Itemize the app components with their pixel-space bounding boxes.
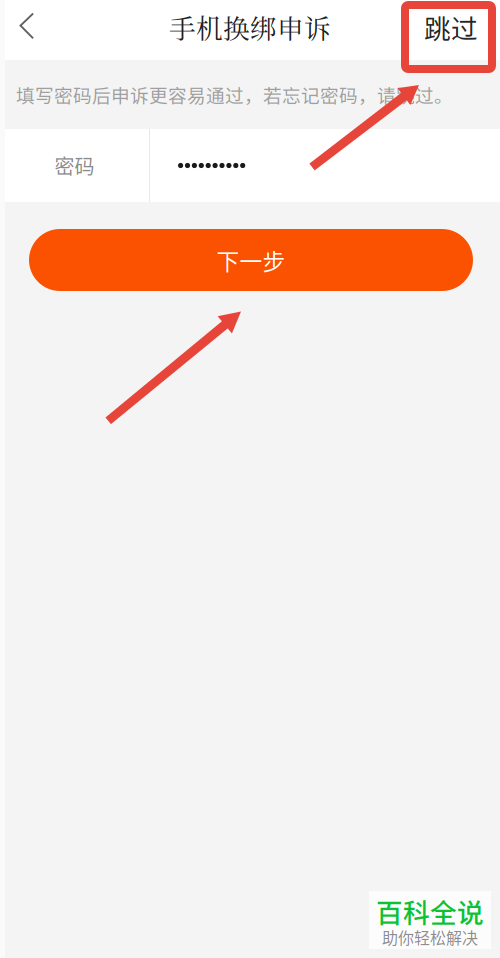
- button[interactable]: 跳过: [402, 0, 500, 60]
- button[interactable]: Back: [0, 0, 54, 60]
- staticText: 跳过: [424, 8, 478, 46]
- staticText: 百科全说: [376, 892, 484, 930]
- staticText: 填写密码后申诉更容易通过，若忘记密码，请跳过。: [16, 81, 453, 108]
- staticText: 手机换绑申诉: [169, 8, 331, 46]
- button[interactable]: 下一步: [29, 229, 473, 291]
- staticText: 密码: [54, 151, 94, 180]
- staticText: 助你轻松解决: [382, 925, 478, 949]
- staticText: 下一步: [216, 244, 285, 276]
